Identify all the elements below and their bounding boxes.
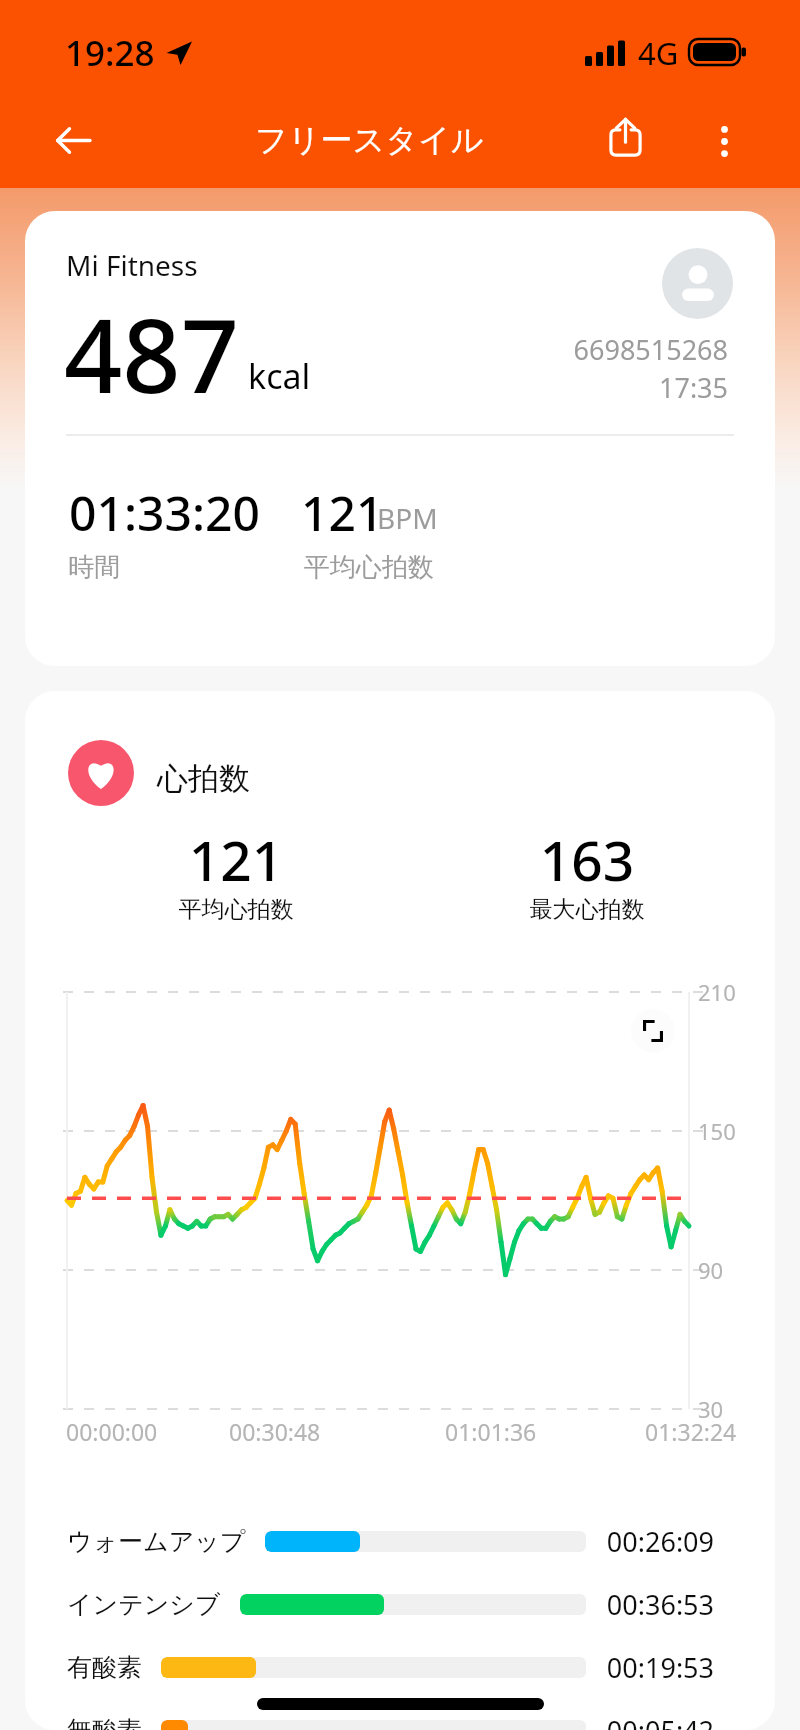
- staticText: 19:28: [65, 29, 155, 77]
- staticText: 01:33:20: [69, 480, 260, 545]
- button[interactable]: Share: [592, 104, 658, 170]
- staticText: 00:19:53: [564, 1649, 714, 1686]
- staticText: 17:35: [428, 369, 728, 406]
- button[interactable]: More options: [691, 108, 757, 174]
- staticText: 心拍数: [157, 759, 250, 798]
- staticText: 00:30:48: [229, 1416, 321, 1447]
- staticText: 時間: [68, 551, 120, 584]
- staticText: 121: [86, 822, 386, 897]
- staticText: ウォームアップ: [67, 1526, 246, 1557]
- staticText: 00:26:09: [564, 1523, 714, 1560]
- staticText: 487: [64, 284, 240, 423]
- staticText: 30: [698, 1394, 724, 1424]
- staticText: 有酸素: [67, 1652, 142, 1683]
- staticText: 4G: [638, 32, 679, 74]
- staticText: 150: [698, 1116, 736, 1146]
- staticText: 01:01:36: [445, 1416, 537, 1447]
- staticText: 最大心拍数: [437, 895, 737, 924]
- staticText: Mi Fitness: [66, 246, 198, 284]
- staticText: 00:00:00: [66, 1416, 158, 1447]
- staticText: 平均心拍数: [86, 895, 386, 924]
- staticText: 平均心拍数: [304, 551, 434, 584]
- staticText: kcal: [248, 353, 311, 399]
- staticText: 210: [698, 977, 736, 1007]
- staticText: 163: [437, 822, 737, 897]
- staticText: 90: [698, 1255, 724, 1285]
- staticText: BPM: [377, 499, 438, 537]
- staticText: インテンシブ: [67, 1589, 221, 1620]
- button[interactable]: Back: [38, 106, 108, 175]
- staticText: フリースタイル: [255, 120, 484, 160]
- staticText: 無酸素: [67, 1715, 142, 1730]
- button[interactable]: Expand chart: [631, 1009, 675, 1053]
- staticText: 00:05:42: [564, 1712, 714, 1730]
- staticText: 01:32:24: [645, 1416, 737, 1447]
- staticText: 121: [301, 480, 384, 545]
- staticText: 6698515268: [428, 331, 728, 368]
- staticText: 00:36:53: [564, 1586, 714, 1623]
